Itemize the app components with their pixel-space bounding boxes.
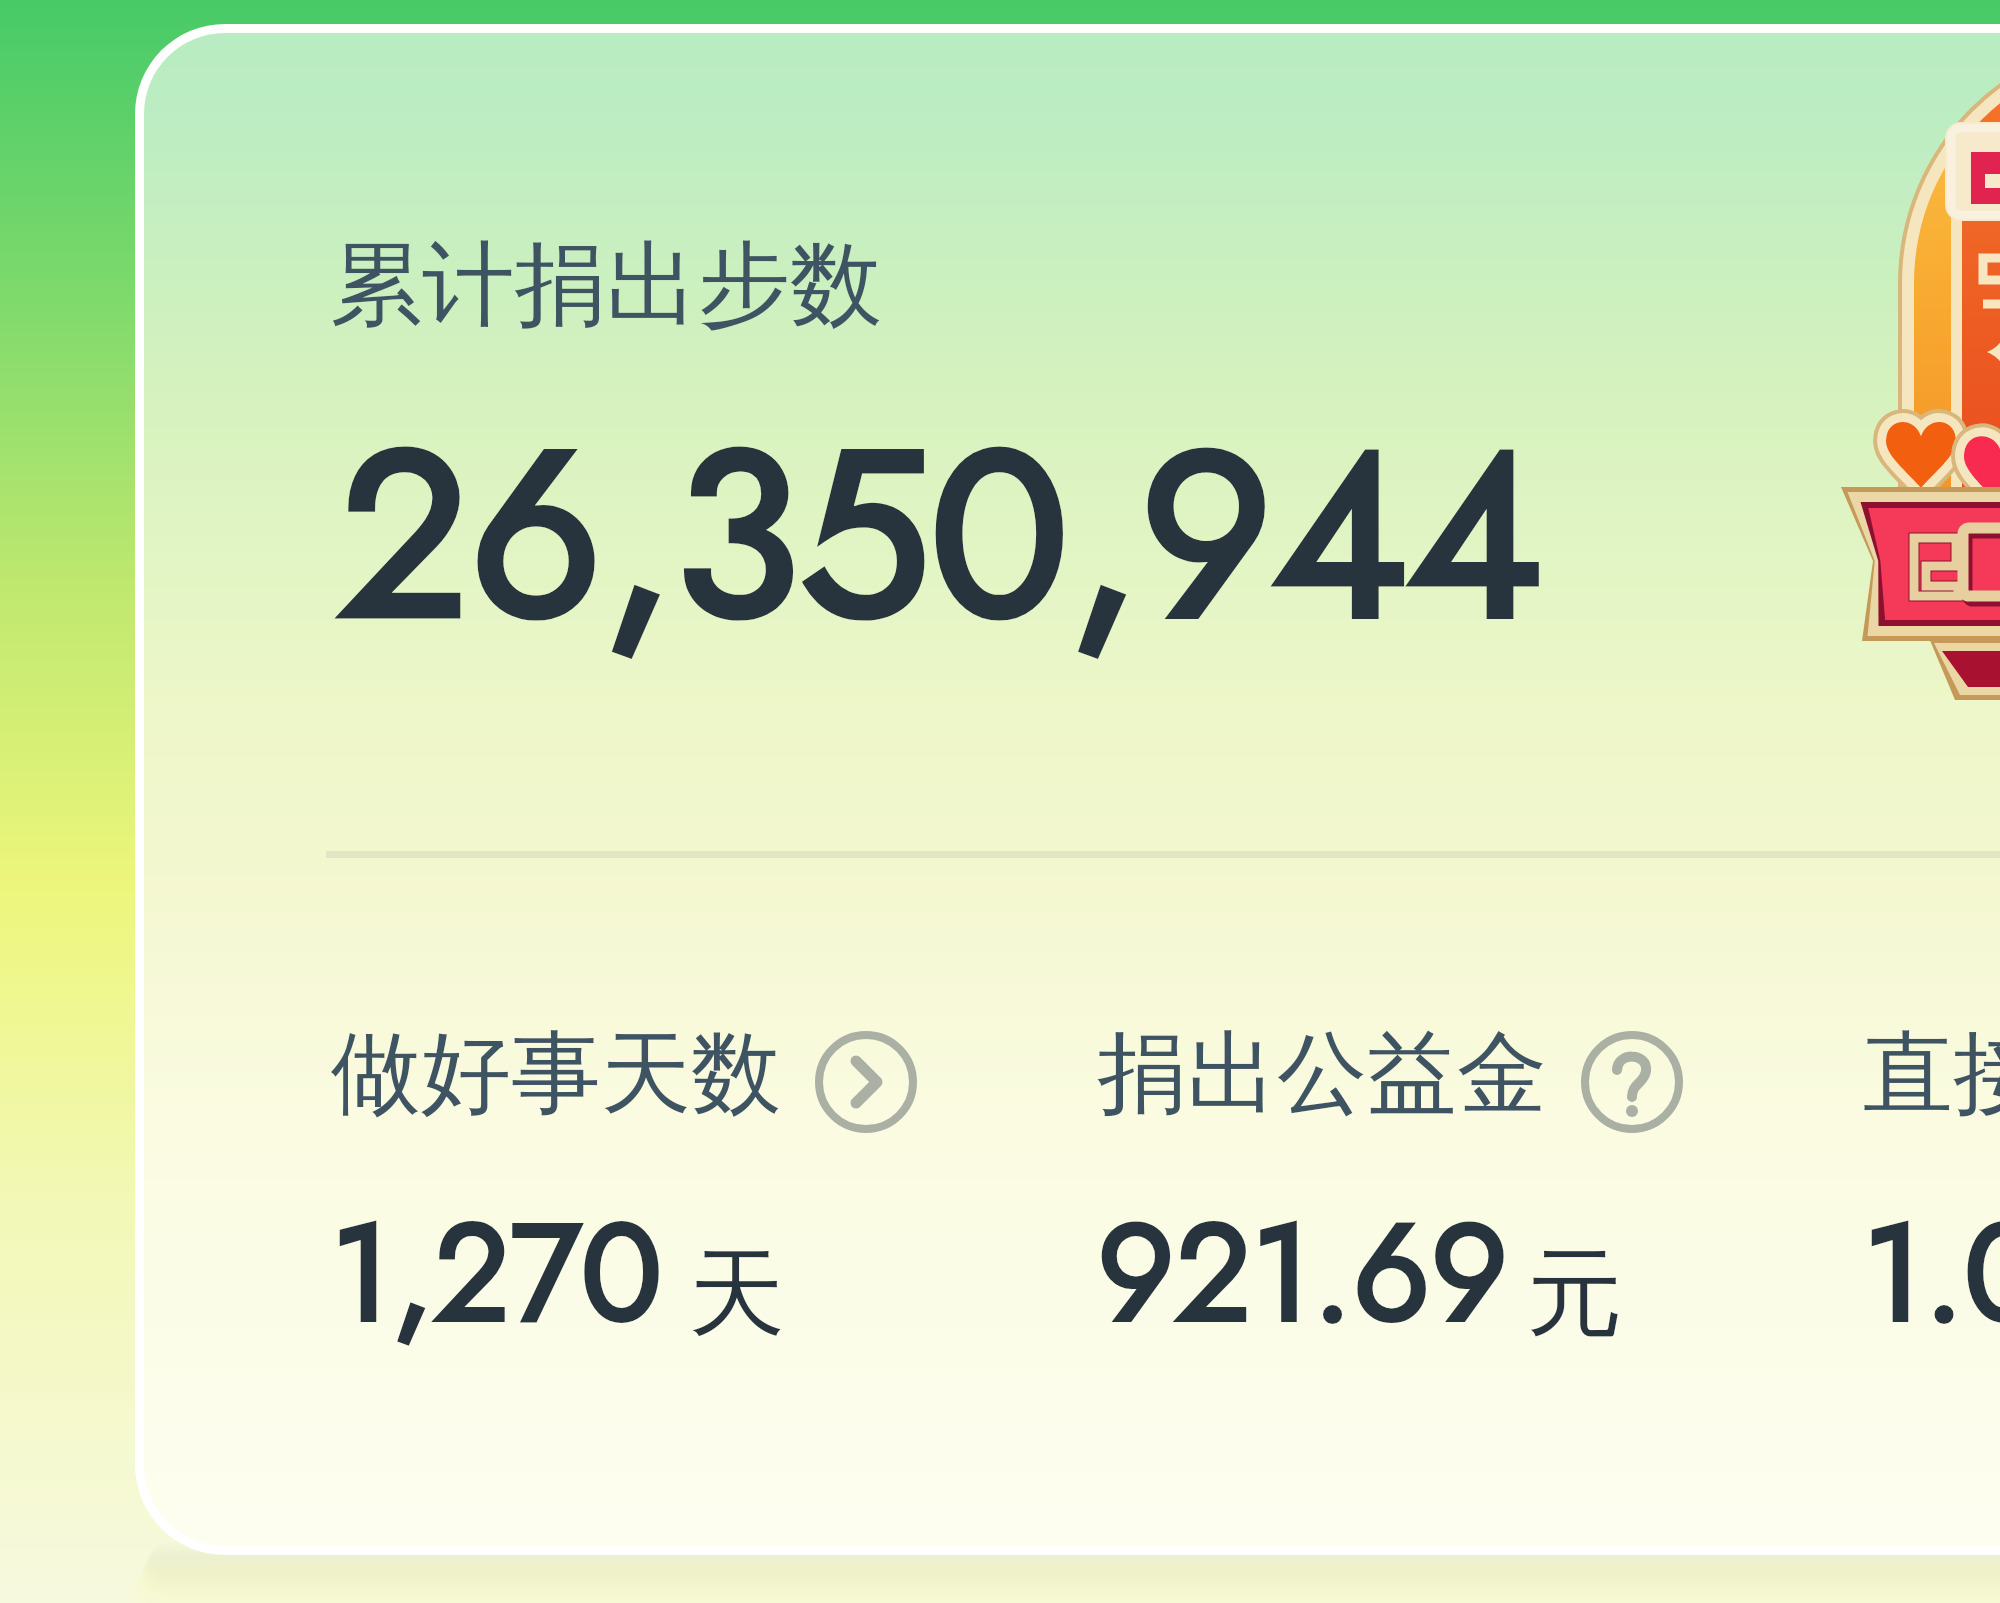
staticText: 捐出公益金: [1097, 1017, 1547, 1130]
staticText: 1.08: [1863, 1176, 2000, 1371]
staticText: 1,270: [331, 1176, 663, 1371]
staticText: 921.69: [1097, 1176, 1509, 1371]
staticText: 做好事天数: [331, 1017, 781, 1130]
staticText: 26,350,944: [338, 368, 1543, 702]
staticText: 累计捐出步数: [330, 227, 882, 343]
staticText: 天: [689, 1234, 785, 1355]
staticText: 元: [1527, 1234, 1623, 1355]
button[interactable]: 累计捐出步数: [144, 33, 2000, 1546]
button[interactable]: More details: [814, 1030, 918, 1134]
button[interactable]: Help: [1580, 1030, 1684, 1134]
staticText: 直接捐步数: [1863, 1017, 2000, 1130]
